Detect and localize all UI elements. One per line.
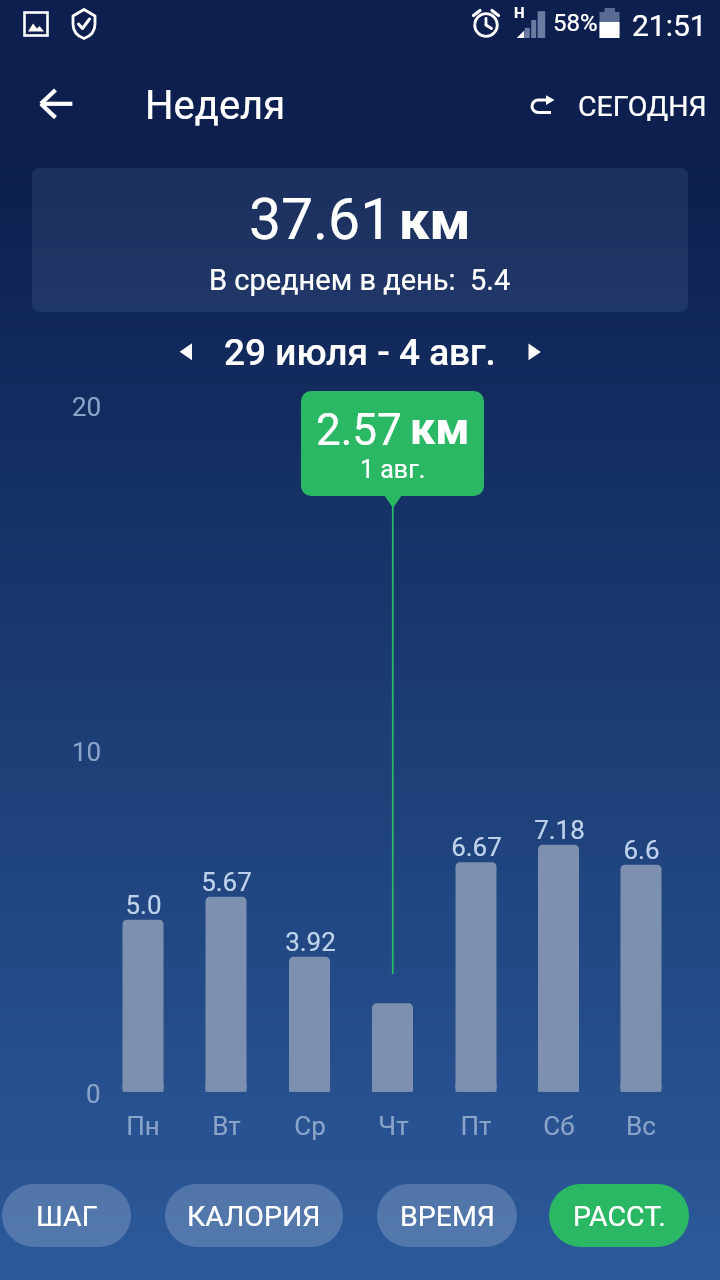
staticText: 3.92 (285, 927, 336, 957)
staticText: H (514, 4, 525, 22)
staticText: Пн (126, 1111, 160, 1141)
staticText: 1 авг. (360, 455, 426, 484)
staticText: 2.57 (316, 404, 402, 456)
button[interactable]: Back (24, 71, 88, 135)
button[interactable]: Previous week (156, 326, 214, 380)
button[interactable]: 37.61 (32, 168, 688, 312)
staticText: 20 (72, 392, 102, 422)
staticText: км (399, 189, 471, 252)
button[interactable]: Next week (506, 326, 564, 380)
staticText: РАССТ. (573, 1200, 666, 1233)
staticText: 7.18 (534, 815, 585, 845)
staticText: 10 (72, 737, 102, 767)
staticText: 21:51 (632, 8, 707, 43)
staticText: В среднем в день: 5.4 (209, 263, 511, 297)
button[interactable]: ВРЕМЯ (377, 1184, 517, 1247)
staticText: Чт (378, 1111, 409, 1141)
staticText: 6.67 (451, 832, 502, 862)
button[interactable]: КАЛОРИЯ (165, 1184, 343, 1247)
button[interactable]: РАССТ. (549, 1184, 689, 1247)
staticText: ШАГ (36, 1200, 98, 1233)
staticText: км (410, 402, 470, 455)
staticText: СЕГОДНЯ (578, 90, 707, 123)
staticText: Неделя (145, 82, 286, 129)
staticText: Ср (294, 1111, 326, 1141)
staticText: Сб (543, 1111, 575, 1141)
staticText: ВРЕМЯ (400, 1200, 495, 1233)
staticText: Вс (626, 1111, 656, 1141)
staticText: 29 июля - 4 авг. (224, 331, 496, 374)
staticText: 5.67 (201, 867, 252, 897)
button[interactable]: СЕГОДНЯ (520, 78, 693, 134)
staticText: 37.61 (249, 186, 393, 253)
staticText: 58% (553, 9, 598, 37)
staticText: КАЛОРИЯ (187, 1200, 321, 1233)
button[interactable]: 2.57 (301, 391, 484, 509)
staticText: Пт (460, 1111, 492, 1141)
staticText: 5.0 (125, 890, 162, 920)
staticText: 0 (86, 1079, 101, 1109)
staticText: 6.6 (623, 835, 660, 865)
button[interactable]: ШАГ (2, 1184, 131, 1247)
staticText: Вт (212, 1111, 241, 1141)
